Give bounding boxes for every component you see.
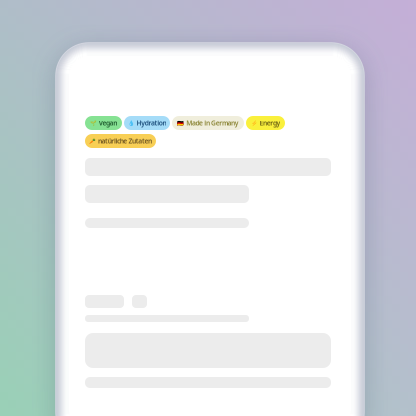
staticText: Energy <box>259 119 280 127</box>
staticText: natürliche Zutaten <box>98 137 152 145</box>
button[interactable]: 🇩🇪 <box>172 116 244 130</box>
staticText: Hydration <box>137 119 166 127</box>
staticText: 💧 <box>128 120 135 126</box>
staticText: Vegan <box>99 119 117 127</box>
staticText: Made in Germany <box>186 119 239 127</box>
button[interactable]: 🥕 <box>85 134 156 148</box>
button[interactable]: ⚡ <box>246 116 285 130</box>
button[interactable]: 🌱 <box>85 116 122 130</box>
staticText: ⚡ <box>250 120 257 126</box>
staticText: 🥕 <box>89 138 96 144</box>
staticText: 🌱 <box>90 120 97 126</box>
staticText: 🇩🇪 <box>177 120 184 126</box>
button[interactable]: 💧 <box>124 116 170 130</box>
